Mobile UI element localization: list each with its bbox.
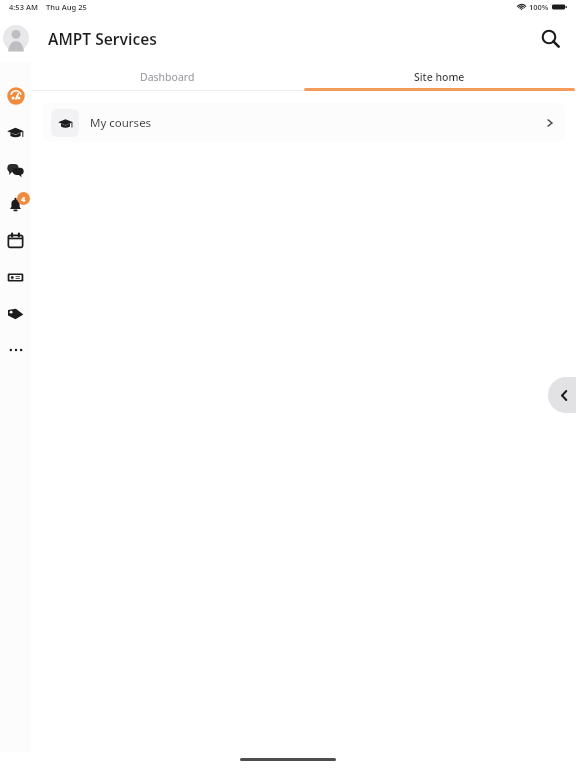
button[interactable]: My courses bbox=[0, 117, 31, 148]
button[interactable]: Cards bbox=[0, 262, 31, 293]
staticText: 4 bbox=[21, 194, 26, 204]
button[interactable]: Tags bbox=[0, 298, 31, 329]
button[interactable]: Calendar bbox=[0, 225, 31, 256]
button[interactable]: Search bbox=[528, 16, 572, 60]
button[interactable]: Site home bbox=[303, 62, 576, 91]
staticText: Site home bbox=[414, 70, 465, 84]
button[interactable]: Open drawer bbox=[548, 377, 576, 413]
button[interactable]: More bbox=[0, 334, 31, 365]
button[interactable]: Dashboard bbox=[0, 80, 31, 111]
button[interactable]: Notifications bbox=[0, 188, 31, 219]
button[interactable]: Messages bbox=[0, 154, 31, 185]
button[interactable]: Dashboard bbox=[31, 62, 303, 91]
staticText: My courses bbox=[90, 115, 152, 131]
staticText: Thu Aug 25 bbox=[46, 2, 87, 12]
staticText: AMPT Services bbox=[48, 28, 157, 49]
staticText: Dashboard bbox=[140, 70, 195, 84]
staticText: 4:53 AM bbox=[9, 2, 38, 12]
button[interactable]: My courses bbox=[42, 103, 565, 142]
staticText: 100% bbox=[529, 2, 549, 12]
